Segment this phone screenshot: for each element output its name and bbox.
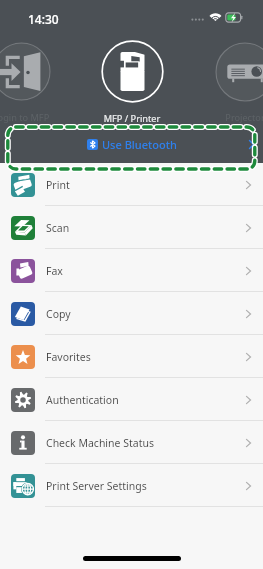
- staticText: Check Machine Status: [46, 436, 154, 450]
- button[interactable]: Check Machine Status: [0, 421, 263, 464]
- staticText: Favorites: [46, 350, 91, 364]
- button[interactable]: Use Bluetooth: [0, 126, 263, 163]
- button[interactable]: Print Server Settings: [0, 464, 263, 507]
- staticText: Scan: [46, 221, 70, 235]
- button[interactable]: Authentication: [0, 378, 263, 421]
- staticText: 14:30: [28, 11, 59, 27]
- staticText: Use Bluetooth: [102, 137, 177, 152]
- button[interactable]: Print: [0, 163, 263, 206]
- staticText: Authentication: [46, 393, 119, 407]
- button[interactable]: Favorites: [0, 335, 263, 378]
- staticText: Print Server Settings: [46, 479, 147, 493]
- staticText: Projector: [185, 111, 263, 124]
- button[interactable]: MFP / Printer: [101, 40, 164, 103]
- staticText: MFP / Printer: [72, 112, 192, 125]
- staticText: Fax: [46, 264, 63, 278]
- staticText: Login to MFP: [0, 111, 81, 124]
- button[interactable]: Projector: [215, 42, 263, 102]
- staticText: Print: [46, 178, 70, 192]
- staticText: Copy: [46, 307, 71, 321]
- button[interactable]: Fax: [0, 249, 263, 292]
- button[interactable]: Login to MFP: [0, 42, 51, 101]
- button[interactable]: Copy: [0, 292, 263, 335]
- button[interactable]: Scan: [0, 206, 263, 249]
